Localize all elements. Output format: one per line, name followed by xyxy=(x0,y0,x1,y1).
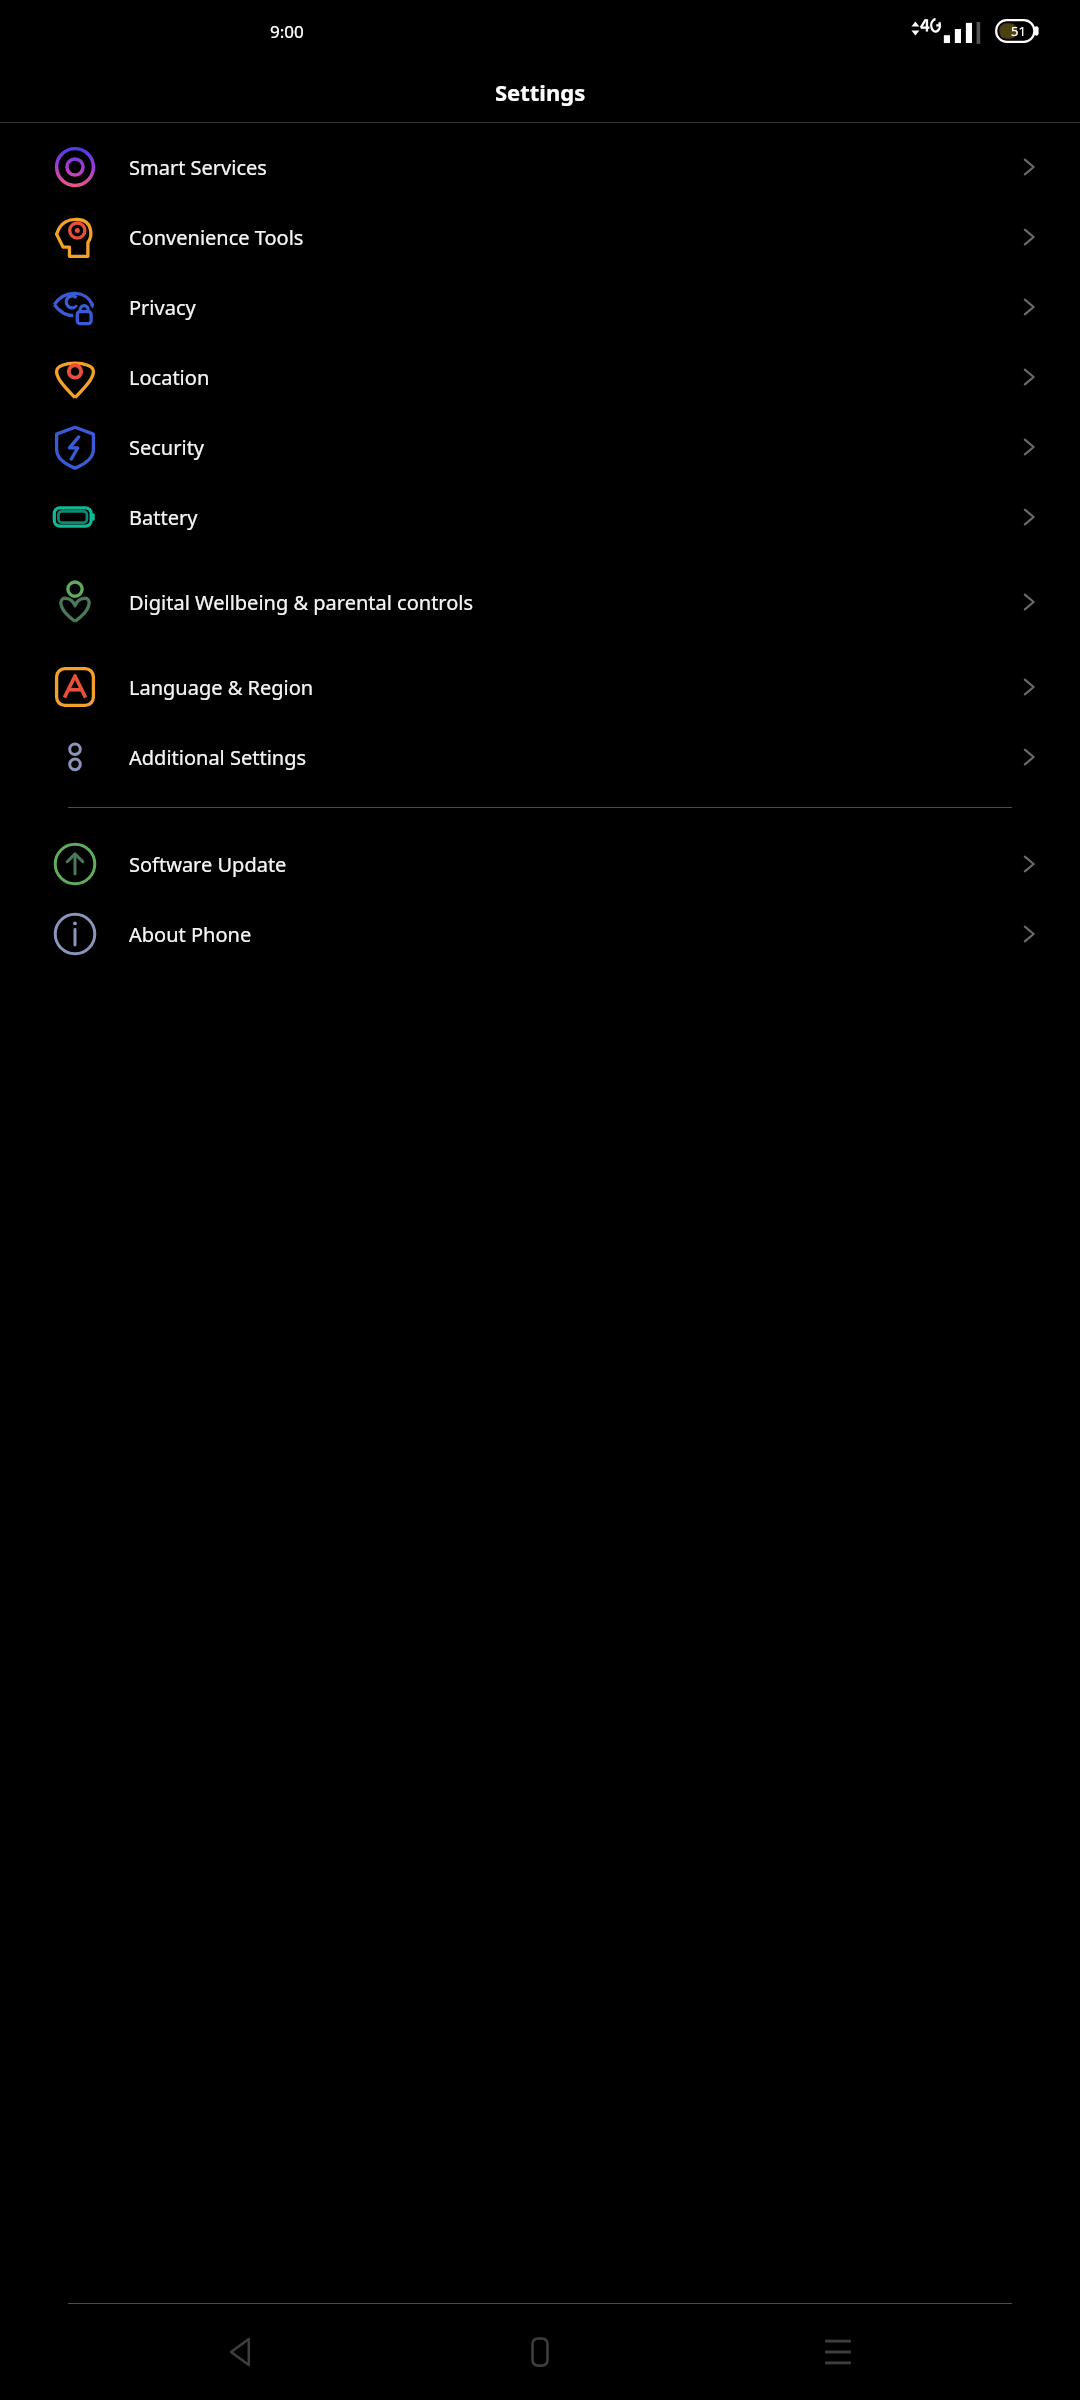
button[interactable]: Language & Region xyxy=(0,652,1080,722)
button[interactable]: Security xyxy=(0,412,1080,482)
button[interactable]: Location xyxy=(0,342,1080,412)
button[interactable]: Software Update xyxy=(0,829,1080,899)
button[interactable]: Digital Wellbeing & parental controls xyxy=(0,552,1080,652)
button[interactable]: Home xyxy=(484,2304,596,2400)
staticText: Additional Settings xyxy=(129,744,994,771)
staticText: Smart Services xyxy=(129,154,994,181)
button[interactable]: Battery xyxy=(0,482,1080,552)
staticText: Digital Wellbeing & parental controls xyxy=(129,589,994,616)
staticText: Battery xyxy=(129,504,994,531)
button[interactable]: Privacy xyxy=(0,272,1080,342)
button[interactable]: Smart Services xyxy=(0,132,1080,202)
staticText: Location xyxy=(129,364,994,391)
staticText: Security xyxy=(129,434,994,461)
staticText: Language & Region xyxy=(129,674,994,701)
button[interactable]: Convenience Tools xyxy=(0,202,1080,272)
staticText: About Phone xyxy=(129,921,994,948)
staticText: Privacy xyxy=(129,294,994,321)
button[interactable]: Recent apps xyxy=(782,2304,894,2400)
staticText: Software Update xyxy=(129,851,994,878)
staticText: Settings xyxy=(495,77,586,107)
button[interactable]: About Phone xyxy=(0,899,1080,969)
button[interactable]: Additional Settings xyxy=(0,722,1080,792)
staticText: 9:00 xyxy=(270,20,304,43)
button[interactable]: Back xyxy=(186,2304,298,2400)
staticText: Convenience Tools xyxy=(129,224,994,251)
staticText: 51 xyxy=(1011,22,1026,40)
